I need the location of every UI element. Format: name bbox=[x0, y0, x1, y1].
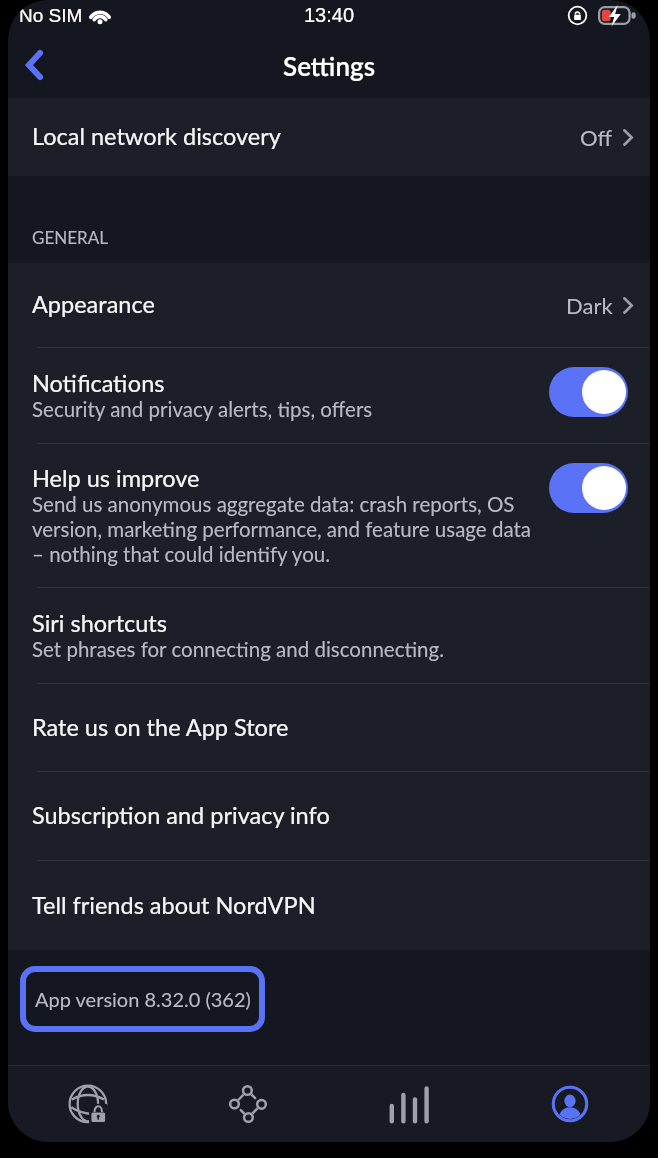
staticText: Tell friends about NordVPN bbox=[32, 891, 316, 919]
button[interactable]: VPN bbox=[8, 1066, 168, 1142]
button[interactable]: Notifications bbox=[8, 348, 650, 443]
staticText: Help us improve bbox=[32, 464, 200, 492]
staticText: Appearance bbox=[32, 290, 155, 318]
staticText: No SIM bbox=[19, 5, 83, 26]
staticText: App version 8.32.0 (362) bbox=[35, 987, 251, 1011]
button[interactable]: Local network discovery bbox=[8, 98, 650, 176]
staticText: Dark bbox=[566, 292, 613, 318]
button[interactable]: Rate us on the App Store bbox=[8, 684, 650, 771]
button[interactable]: Subscription and privacy info bbox=[8, 772, 650, 860]
button[interactable]: Back bbox=[8, 32, 80, 98]
staticText: Security and privacy alerts, tips, offer… bbox=[32, 397, 373, 422]
staticText: Settings bbox=[283, 50, 376, 81]
button[interactable]: Account bbox=[489, 1066, 650, 1142]
staticText: GENERAL bbox=[32, 227, 108, 247]
button[interactable]: Mesh network bbox=[168, 1066, 328, 1142]
staticText: Local network discovery bbox=[32, 122, 281, 150]
staticText: Set phrases for connecting and disconnec… bbox=[32, 637, 445, 662]
button[interactable]: App version 8.32.0 (362) bbox=[20, 966, 265, 1032]
button[interactable]: Help us improve toggle bbox=[549, 463, 628, 513]
staticText: Send us anonymous aggregate data: crash … bbox=[32, 492, 532, 567]
button[interactable]: Stats bbox=[328, 1066, 489, 1142]
staticText: Off bbox=[580, 124, 613, 150]
staticText: Subscription and privacy info bbox=[32, 801, 330, 829]
button[interactable]: Siri shortcuts bbox=[8, 588, 650, 683]
button[interactable]: Tell friends about NordVPN bbox=[8, 861, 650, 950]
staticText: Siri shortcuts bbox=[32, 609, 167, 637]
button[interactable]: Notifications toggle bbox=[549, 367, 628, 417]
staticText: Rate us on the App Store bbox=[32, 713, 289, 741]
staticText: Notifications bbox=[32, 369, 165, 397]
button[interactable]: Help us improve bbox=[8, 444, 650, 587]
staticText: 13:40 bbox=[304, 4, 355, 26]
button[interactable]: Appearance bbox=[8, 263, 650, 347]
